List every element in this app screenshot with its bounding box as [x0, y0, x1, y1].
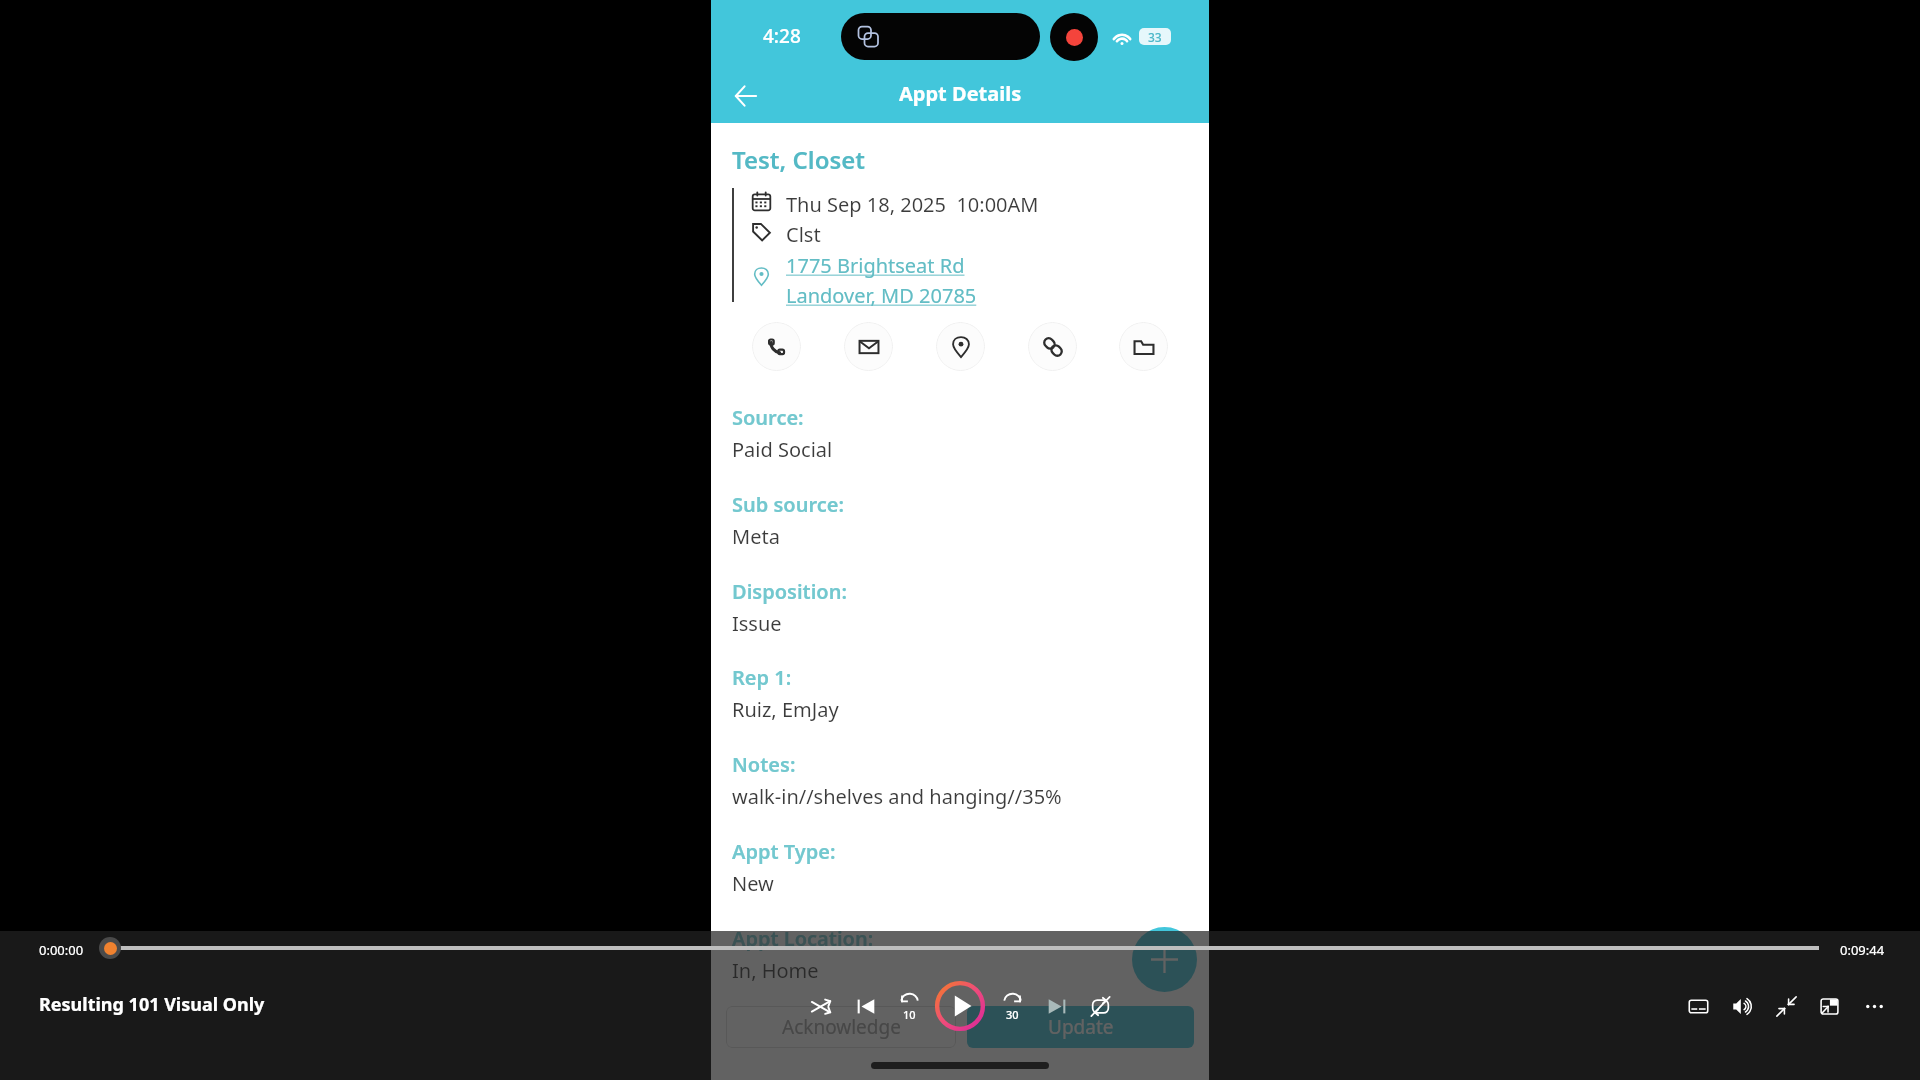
staticText: Notes:: [732, 751, 796, 778]
staticText: Source:: [732, 404, 804, 431]
button[interactable]: Play: [932, 978, 988, 1034]
button[interactable]: Files: [1119, 322, 1168, 371]
staticText: 0:00:00: [39, 941, 84, 959]
staticText: Thu Sep 18, 2025 10:00AM: [786, 191, 1039, 218]
staticText: Appt Location:: [732, 925, 874, 952]
staticText: walk-in//shelves and hanging//35%: [732, 783, 1062, 810]
staticText: Clst: [786, 221, 821, 248]
button[interactable]: Forward 30 seconds: [991, 985, 1033, 1027]
button[interactable]: Rewind 10 seconds: [888, 985, 930, 1027]
staticText: 1775 Brightseat Rd: [786, 252, 965, 279]
button[interactable]: Email: [844, 322, 893, 371]
button[interactable]: Update: [967, 1006, 1194, 1048]
staticText: In, Home: [732, 957, 819, 984]
button[interactable]: Back: [725, 76, 765, 116]
button[interactable]: Map: [936, 322, 985, 371]
staticText: Appt Details: [899, 80, 1022, 107]
staticText: Rep 1:: [732, 664, 792, 691]
staticText: Test, Closet: [732, 143, 866, 176]
staticText: Ruiz, EmJay: [732, 696, 839, 723]
button[interactable]: Subtitles: [1678, 986, 1718, 1026]
staticText: Disposition:: [732, 578, 847, 605]
button[interactable]: Shuffle: [800, 985, 842, 1027]
staticText: Meta: [732, 523, 780, 550]
button[interactable]: Picture in picture: [1809, 986, 1849, 1026]
button[interactable]: Previous: [845, 985, 887, 1027]
staticText: 10: [903, 1007, 916, 1022]
button[interactable]: 1775 Brightseat Rd: [786, 252, 977, 309]
button[interactable]: Exit full screen: [1766, 986, 1806, 1026]
staticText: Update: [1048, 1014, 1114, 1040]
button[interactable]: More options: [1854, 986, 1894, 1026]
staticText: 4:28: [763, 23, 801, 49]
button[interactable]: Acknowledge: [726, 1006, 956, 1048]
staticText: 30: [1006, 1007, 1019, 1022]
button[interactable]: Repeat off: [1079, 985, 1121, 1027]
staticText: New: [732, 870, 774, 897]
staticText: 0:09:44: [1840, 941, 1885, 959]
staticText: Appt Type:: [732, 838, 836, 865]
button[interactable]: Next: [1035, 985, 1077, 1027]
staticText: Paid Social: [732, 436, 833, 463]
button[interactable]: Add: [1132, 927, 1197, 992]
button[interactable]: Volume: [1722, 986, 1762, 1026]
staticText: Landover, MD 20785: [786, 282, 977, 309]
button[interactable]: Call: [752, 322, 801, 371]
staticText: Issue: [732, 610, 782, 637]
button[interactable]: Link: [1028, 322, 1077, 371]
staticText: 33: [1148, 29, 1162, 45]
staticText: Resulting 101 Visual Only: [39, 992, 265, 1017]
staticText: Sub source:: [732, 491, 844, 518]
staticText: Acknowledge: [782, 1014, 901, 1040]
